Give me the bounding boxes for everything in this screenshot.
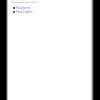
staticText: Paula Gates: [16, 10, 33, 14]
button[interactable]: Paula Gates: [7, 10, 33, 14]
staticText: Paul Jones: [16, 6, 31, 10]
button[interactable]: Address bar: [10, 0, 38, 3]
button[interactable]: Paul Jones: [7, 6, 31, 10]
